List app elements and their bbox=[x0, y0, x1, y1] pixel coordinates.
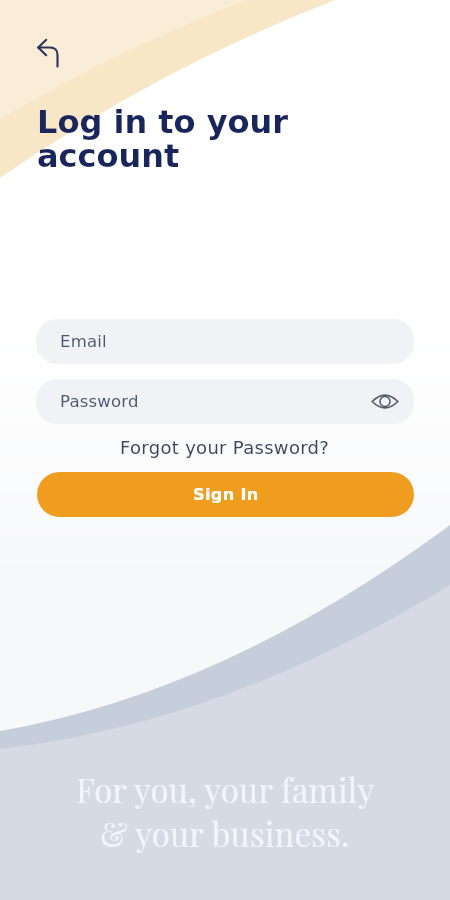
staticText: For you, your family bbox=[76, 767, 375, 811]
button[interactable]: Password bbox=[36, 379, 414, 424]
staticText: Password bbox=[60, 392, 139, 411]
staticText: Email bbox=[60, 332, 107, 351]
button[interactable]: Forgot your Password? bbox=[120, 437, 330, 458]
button[interactable] bbox=[30, 30, 66, 66]
staticText: & your business. bbox=[100, 811, 350, 855]
staticText: Log in to your account bbox=[37, 103, 289, 175]
staticText: Sign In bbox=[193, 485, 259, 504]
button[interactable]: Email bbox=[36, 319, 414, 364]
button[interactable]: Sign In bbox=[37, 472, 414, 517]
